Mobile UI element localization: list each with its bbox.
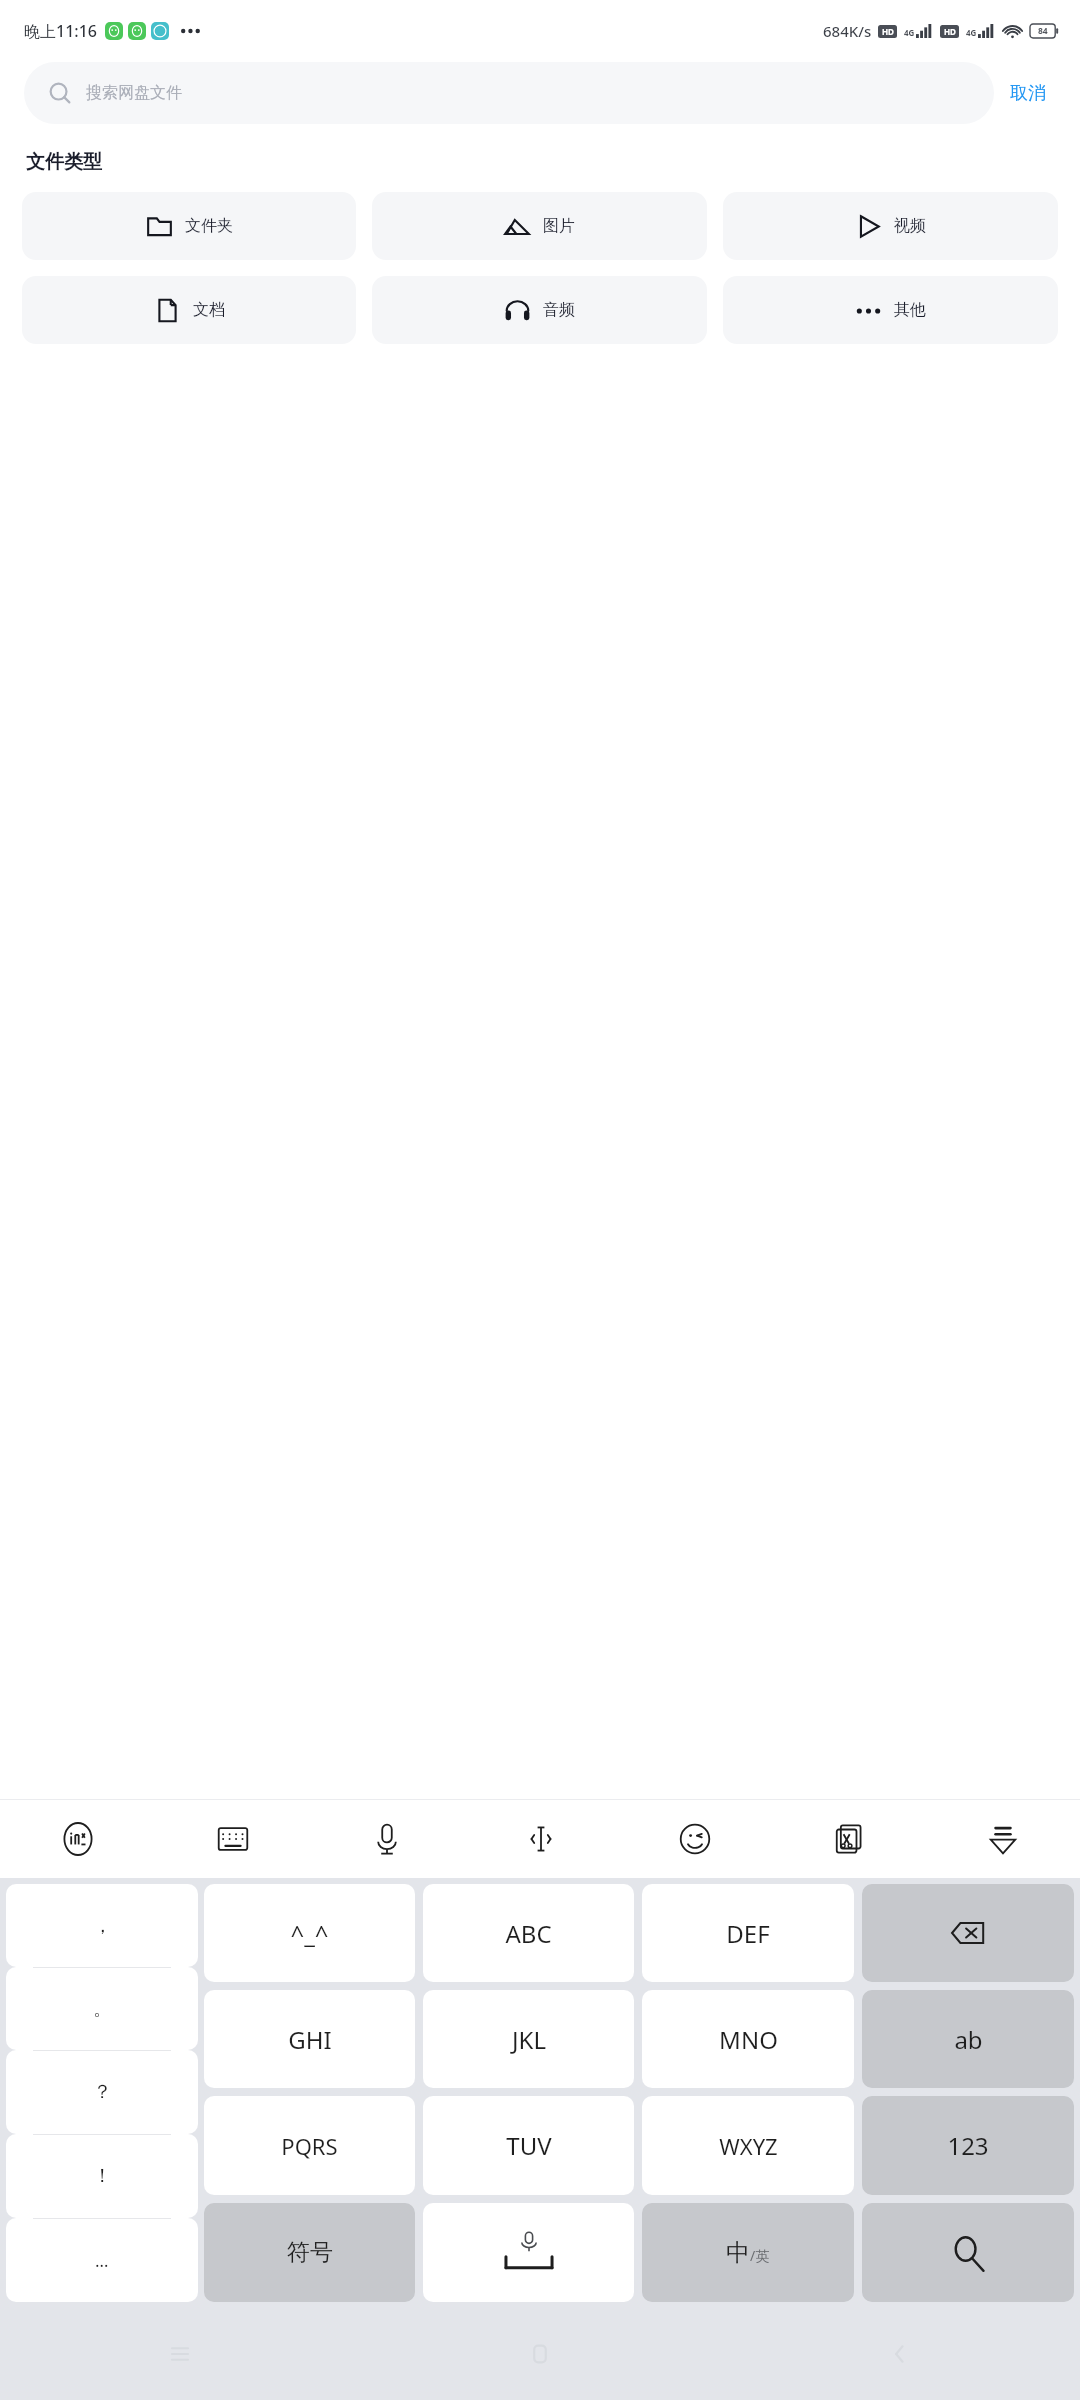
button[interactable]: 符号 — [204, 2203, 415, 2302]
staticText: 中 — [726, 2238, 750, 2268]
staticText: PQRS — [281, 2131, 338, 2161]
button[interactable]: IME — [0, 1800, 155, 1878]
button[interactable]: DEF — [642, 1884, 854, 1982]
staticText: 音频 — [543, 300, 575, 320]
button[interactable]: WXYZ — [642, 2096, 854, 2195]
button[interactable]: GHI — [204, 1990, 415, 2088]
button[interactable]: Emoji — [618, 1800, 772, 1878]
staticText: WXYZ — [719, 2131, 778, 2161]
button[interactable]: JKL — [423, 1990, 634, 2088]
staticText: ！ — [93, 2164, 112, 2188]
staticText: 其他 — [894, 300, 926, 320]
staticText: 文件夹 — [185, 216, 233, 236]
button[interactable]: 文件夹 — [22, 192, 356, 260]
staticText: ABC — [505, 1917, 552, 1950]
button[interactable]: MNO — [642, 1990, 854, 2088]
button[interactable]: 其他 — [723, 276, 1058, 344]
button[interactable]: TUV — [423, 2096, 634, 2195]
button[interactable]: ^_^ — [204, 1884, 415, 1982]
staticText: 符号 — [287, 2238, 333, 2267]
button[interactable]: ABC — [423, 1884, 634, 1982]
staticText: /英 — [750, 2246, 770, 2265]
button[interactable]: 中 — [642, 2203, 854, 2302]
button[interactable]: 搜索网盘文件 — [24, 62, 994, 124]
staticText: HD — [944, 26, 956, 37]
staticText: MNO — [719, 2023, 778, 2056]
button[interactable]: Space — [423, 2203, 634, 2302]
button[interactable]: 图片 — [372, 192, 707, 260]
staticText: ab — [954, 2023, 983, 2056]
staticText: TUV — [506, 2129, 552, 2162]
staticText: 图片 — [543, 216, 575, 236]
staticText: 文件类型 — [26, 150, 102, 174]
staticText: ， — [93, 1914, 112, 1938]
staticText: 视频 — [894, 216, 926, 236]
staticText: GHI — [288, 2023, 332, 2056]
staticText: 684K/s — [823, 21, 872, 41]
button[interactable]: 取消 — [994, 72, 1062, 115]
button[interactable]: Hide keyboard — [926, 1800, 1080, 1878]
staticText: 取消 — [1010, 82, 1046, 105]
button[interactable]: Cursor — [464, 1800, 618, 1878]
button[interactable]: 文档 — [22, 276, 356, 344]
button[interactable]: ！ — [6, 2134, 198, 2218]
button[interactable]: Delete — [862, 1884, 1074, 1982]
staticText: 123 — [947, 2129, 989, 2162]
button[interactable]: Clipboard — [772, 1800, 926, 1878]
staticText: ？ — [93, 2080, 112, 2104]
button[interactable]: ？ — [6, 2050, 198, 2134]
button[interactable]: Search — [862, 2203, 1074, 2302]
staticText: JKL — [512, 2023, 546, 2056]
staticText: HD — [882, 26, 894, 37]
staticText: 84 — [1038, 25, 1048, 37]
button[interactable]: 。 — [6, 1967, 198, 2050]
staticText: 搜索网盘文件 — [86, 83, 182, 103]
staticText: 4G — [966, 27, 977, 38]
staticText: 。 — [93, 1997, 112, 2021]
button[interactable]: … — [6, 2218, 198, 2302]
button[interactable]: 视频 — [723, 192, 1058, 260]
button[interactable]: ， — [6, 1884, 198, 1967]
button[interactable]: PQRS — [204, 2096, 415, 2195]
button[interactable]: Keyboard — [155, 1800, 310, 1878]
staticText: 文档 — [193, 300, 225, 320]
button[interactable]: 123 — [862, 2096, 1074, 2195]
staticText: ^_^ — [290, 1917, 329, 1950]
staticText: DEF — [726, 1917, 770, 1950]
button[interactable]: 音频 — [372, 276, 707, 344]
staticText: 晚上11:16 — [24, 20, 97, 42]
staticText: … — [95, 2249, 109, 2272]
button[interactable]: Voice input — [310, 1800, 464, 1878]
staticText: 4G — [904, 27, 915, 38]
button[interactable]: ab — [862, 1990, 1074, 2088]
